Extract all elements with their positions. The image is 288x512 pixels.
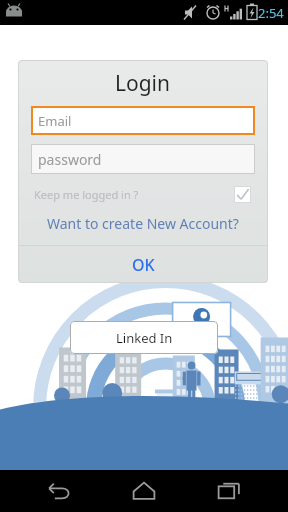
staticText: password [38,150,102,169]
button[interactable]: Want to create New Account? [18,214,268,233]
staticText: Linked In [116,329,173,347]
button[interactable]: Email [31,106,255,135]
button[interactable]: Back [33,470,85,512]
staticText: Keep me logged in ? [34,187,139,202]
staticText: OK [132,254,155,276]
staticText: Want to create New Account? [47,214,239,233]
button[interactable]: Home [118,470,170,512]
button[interactable]: password [31,144,255,174]
button[interactable]: OK [18,246,268,283]
staticText: 2:54 [258,4,284,22]
staticText: Login [115,69,171,98]
button[interactable]: Linked In [70,321,218,354]
staticText: Email [38,112,72,130]
button[interactable]: Keep me logged in ? [34,186,251,203]
button[interactable]: Recent apps [203,470,255,512]
